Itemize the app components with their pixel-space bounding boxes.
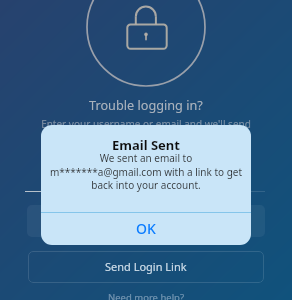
staticText: Send Login Link <box>105 259 187 274</box>
staticText: OK <box>136 219 156 238</box>
button[interactable]: Username or email field <box>27 205 265 237</box>
staticText: Trouble logging in? <box>89 96 203 113</box>
staticText: We sent an email to m*******a@gmail.com … <box>41 151 251 191</box>
button[interactable]: OK <box>41 213 251 245</box>
button[interactable]: Need more help? <box>108 291 185 300</box>
button[interactable]: Send Login Link <box>28 251 264 283</box>
staticText: Email Sent <box>41 136 251 154</box>
staticText: Enter your username or email and we'll s… <box>0 117 292 145</box>
